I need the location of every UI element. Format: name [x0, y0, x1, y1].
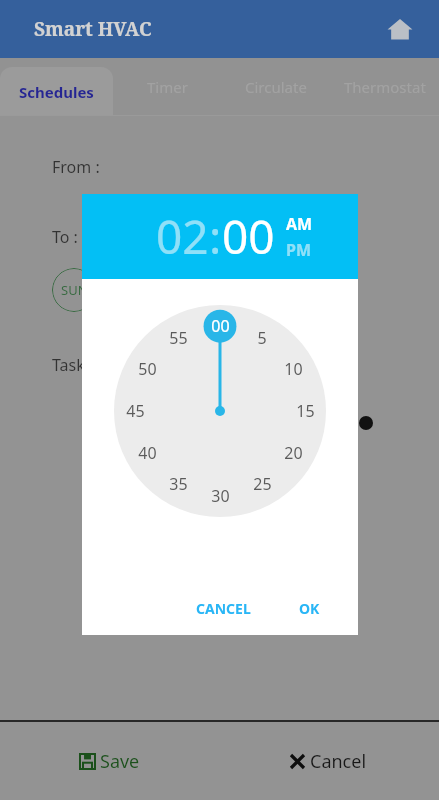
button[interactable]: 25	[114, 305, 326, 517]
staticText: Smart HVAC	[34, 16, 152, 42]
staticText: 00	[211, 315, 230, 337]
staticText: 15	[296, 400, 315, 422]
button[interactable]: 50	[114, 305, 326, 517]
staticText: 55	[169, 327, 188, 349]
button[interactable]: 5	[114, 305, 326, 517]
staticText: SUN	[61, 281, 88, 299]
button[interactable]: 00	[114, 305, 326, 517]
staticText: 20	[284, 442, 303, 464]
staticText: 45	[126, 400, 145, 422]
staticText: 5	[257, 327, 267, 349]
button[interactable]: AM	[286, 213, 313, 235]
staticText: 35	[169, 473, 188, 495]
staticText: Timer	[147, 77, 188, 97]
staticText: Circulate	[245, 77, 307, 97]
button[interactable]: 02	[156, 205, 209, 268]
staticText: 25	[253, 473, 272, 495]
button[interactable]: Schedules	[0, 67, 113, 116]
staticText: 50	[138, 358, 157, 380]
button[interactable]: 15	[114, 305, 326, 517]
staticText: 40	[138, 442, 157, 464]
staticText: Cancel	[310, 749, 367, 774]
button[interactable]: Save	[0, 722, 219, 800]
button[interactable]: 00	[222, 205, 275, 268]
staticText: 10	[284, 358, 303, 380]
button[interactable]: 30	[114, 305, 326, 517]
staticText: Thermostat	[344, 77, 426, 97]
button[interactable]: 45	[114, 305, 326, 517]
button[interactable]: 20	[114, 305, 326, 517]
staticText: :	[209, 205, 222, 268]
button[interactable]: 35	[114, 305, 326, 517]
button[interactable]: 40	[114, 305, 326, 517]
staticText: 30	[211, 485, 230, 507]
button[interactable]: OK	[285, 591, 334, 626]
button[interactable]: 10	[114, 305, 326, 517]
button[interactable]: CANCEL	[182, 591, 265, 626]
button[interactable]: SUN	[52, 268, 96, 312]
staticText: To :	[52, 226, 78, 248]
staticText: Schedules	[19, 82, 94, 102]
button[interactable]: PM	[286, 239, 312, 261]
staticText: Save	[100, 749, 140, 774]
staticText: Task :	[52, 354, 94, 376]
staticText: From :	[52, 156, 100, 178]
button[interactable]: Home	[383, 12, 417, 46]
staticText: CANCEL	[196, 599, 251, 618]
staticText: OK	[299, 599, 320, 618]
button[interactable]: 55	[114, 305, 326, 517]
button[interactable]: Cancel	[219, 722, 439, 800]
